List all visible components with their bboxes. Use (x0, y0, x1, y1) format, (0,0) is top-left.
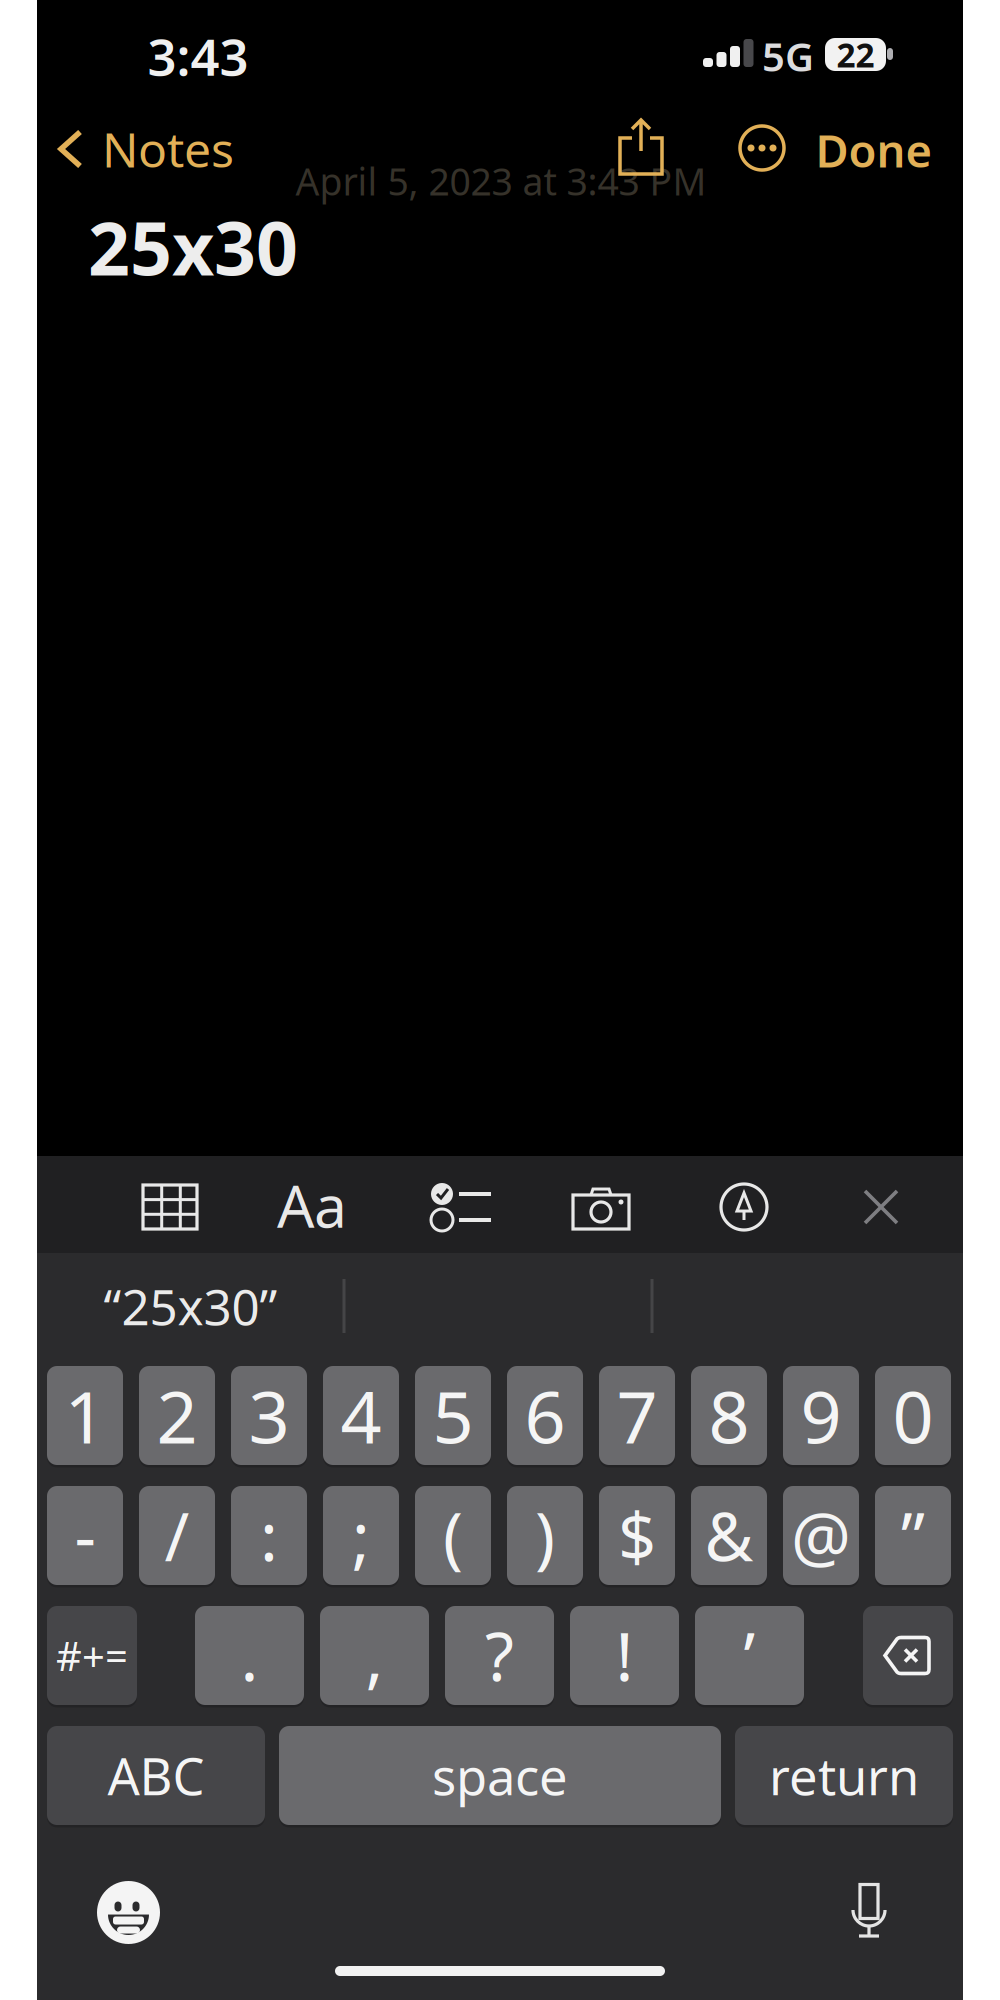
button[interactable]: Formatting (277, 1166, 347, 1244)
staticText: ( (443, 1491, 463, 1580)
button[interactable]: return (735, 1726, 953, 1825)
button[interactable]: space (279, 1726, 721, 1825)
staticText: 0 (892, 1368, 933, 1463)
staticText: “25x30” (103, 1273, 277, 1339)
staticText: April 5, 2023 at 3:43 PM (295, 156, 706, 206)
staticText: 2 (156, 1368, 197, 1463)
staticText: Done (815, 120, 932, 180)
button[interactable]: 1 (47, 1366, 123, 1465)
button[interactable]: ABC (47, 1726, 265, 1825)
staticText: 6 (524, 1368, 565, 1463)
staticText: ’ (743, 1611, 755, 1700)
staticText: 3:43 (147, 22, 248, 90)
staticText: 4 (340, 1368, 381, 1463)
staticText: space (432, 1742, 568, 1809)
staticText: 8 (708, 1368, 749, 1463)
staticText: & (704, 1491, 753, 1580)
button[interactable]: Checklist (431, 1183, 493, 1231)
button[interactable]: ’ (695, 1606, 804, 1705)
button[interactable]: Insert table (141, 1183, 199, 1231)
button[interactable]: ! (570, 1606, 679, 1705)
button[interactable]: ) (507, 1486, 583, 1585)
button[interactable]: ; (323, 1486, 399, 1585)
button[interactable]: “25x30” (37, 1254, 344, 1358)
staticText: ; (352, 1491, 370, 1580)
button[interactable]: 2 (139, 1366, 215, 1465)
button[interactable]: - (47, 1486, 123, 1585)
button[interactable]: ” (875, 1486, 951, 1585)
button[interactable]: 8 (691, 1366, 767, 1465)
button[interactable]: / (139, 1486, 215, 1585)
button[interactable]: Delete (863, 1606, 953, 1705)
staticText: ! (615, 1611, 633, 1700)
button[interactable]: & (691, 1486, 767, 1585)
button[interactable]: #+= (47, 1606, 137, 1705)
staticText: $ (618, 1491, 656, 1580)
button[interactable]: 9 (783, 1366, 859, 1465)
staticText: 9 (800, 1368, 841, 1463)
button[interactable]: 6 (507, 1366, 583, 1465)
button[interactable]: 5 (415, 1366, 491, 1465)
staticText: 3 (248, 1368, 289, 1463)
staticText: , (365, 1611, 383, 1700)
button[interactable]: Emoji (96, 1880, 160, 1944)
button[interactable]: : (231, 1486, 307, 1585)
button[interactable]: Camera (571, 1185, 631, 1231)
staticText: 5 (432, 1368, 473, 1463)
button[interactable]: . (195, 1606, 304, 1705)
button[interactable]: More (738, 124, 786, 172)
staticText: . (240, 1611, 258, 1700)
staticText: 25x30 (88, 198, 298, 296)
staticText: 7 (616, 1368, 657, 1463)
staticText: 1 (64, 1368, 105, 1463)
button[interactable]: $ (599, 1486, 675, 1585)
button[interactable]: Share (611, 118, 671, 176)
staticText: 5G (762, 29, 814, 82)
button[interactable]: Markup (719, 1182, 769, 1232)
staticText: 22 (836, 32, 874, 77)
button[interactable]: ? (445, 1606, 554, 1705)
staticText: ” (901, 1491, 925, 1580)
staticText: #+= (56, 1629, 128, 1682)
button[interactable]: ( (415, 1486, 491, 1585)
button[interactable]: Notes (58, 117, 234, 181)
button[interactable]: 0 (875, 1366, 951, 1465)
staticText: Aa (277, 1166, 347, 1244)
staticText: @ (791, 1491, 851, 1580)
staticText: ? (485, 1611, 514, 1700)
staticText: Notes (102, 117, 234, 181)
button[interactable]: Dictation (849, 1883, 889, 1941)
staticText: ABC (107, 1742, 204, 1809)
button[interactable]: Done (815, 120, 932, 180)
button[interactable]: 3 (231, 1366, 307, 1465)
button[interactable]: , (320, 1606, 429, 1705)
staticText: / (164, 1491, 189, 1580)
button[interactable]: 4 (323, 1366, 399, 1465)
staticText: return (769, 1742, 919, 1809)
staticText: ) (535, 1491, 555, 1580)
staticText: : (260, 1491, 278, 1580)
staticText: - (74, 1491, 95, 1580)
button[interactable]: Close (863, 1189, 899, 1225)
button[interactable]: @ (783, 1486, 859, 1585)
button[interactable]: 7 (599, 1366, 675, 1465)
